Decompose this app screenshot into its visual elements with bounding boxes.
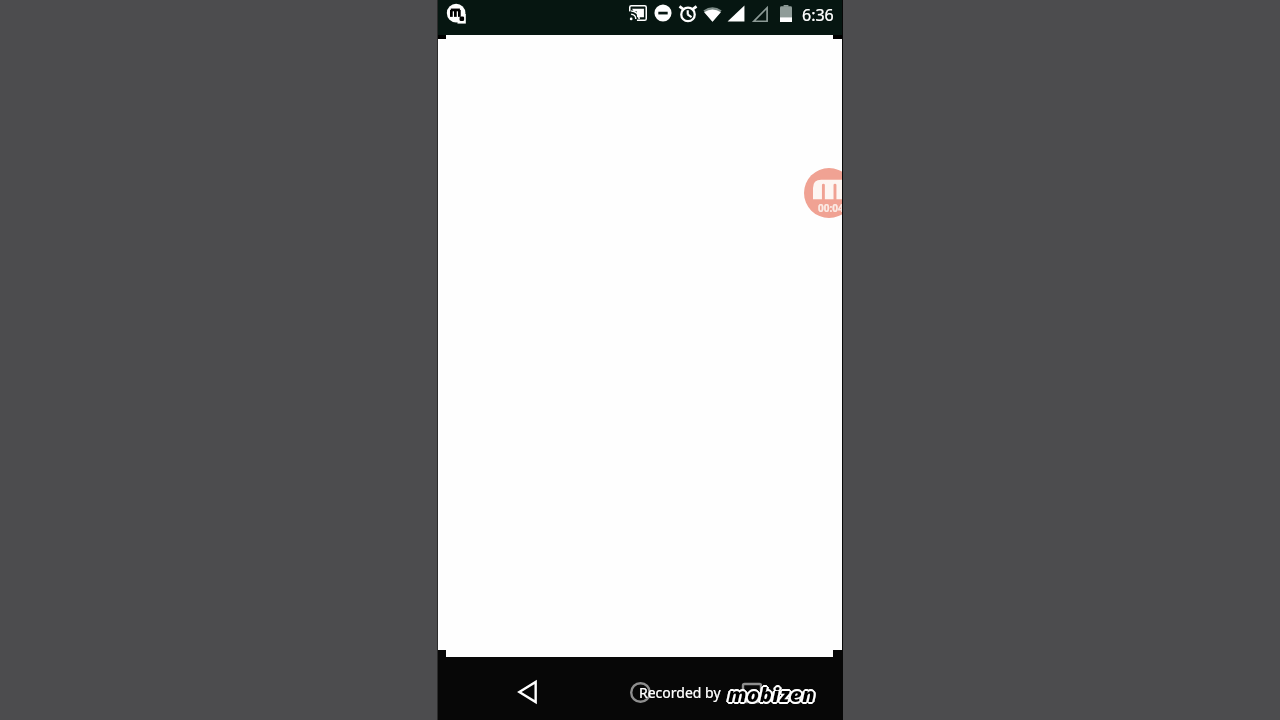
staticText: File manager bbox=[459, 647, 527, 662]
staticText: mobizen bbox=[726, 681, 814, 703]
button[interactable]: Recent apps bbox=[730, 671, 774, 715]
staticText: Flash Player bbox=[576, 647, 638, 662]
staticText: FM Radio bbox=[687, 647, 735, 662]
button[interactable]: Gallery bbox=[784, 647, 821, 662]
button[interactable]: File manager bbox=[459, 647, 527, 662]
staticText: mobizen bbox=[728, 681, 816, 703]
button[interactable]: Status bar bbox=[437, 0, 843, 35]
staticText: mobizen bbox=[730, 681, 818, 703]
button[interactable]: FM Radio bbox=[687, 647, 735, 662]
staticText: mobizen bbox=[728, 683, 816, 705]
staticText: mobizen bbox=[728, 679, 816, 701]
staticText: mobizen bbox=[727, 682, 815, 704]
staticText: mobizen bbox=[727, 680, 815, 702]
staticText: 6:36 bbox=[802, 4, 834, 26]
staticText: Gallery bbox=[784, 647, 821, 662]
staticText: Recorded by bbox=[639, 683, 721, 702]
button[interactable]: Home bbox=[618, 670, 662, 714]
staticText: 00:04 bbox=[818, 201, 843, 215]
staticText: mobizen bbox=[729, 680, 817, 702]
button[interactable]: Back bbox=[505, 670, 549, 714]
button[interactable]: Mobizen screen recorder, recording 00:04 bbox=[804, 168, 843, 218]
button[interactable]: Flash Player bbox=[576, 647, 638, 662]
staticText: mobizen bbox=[729, 682, 817, 704]
